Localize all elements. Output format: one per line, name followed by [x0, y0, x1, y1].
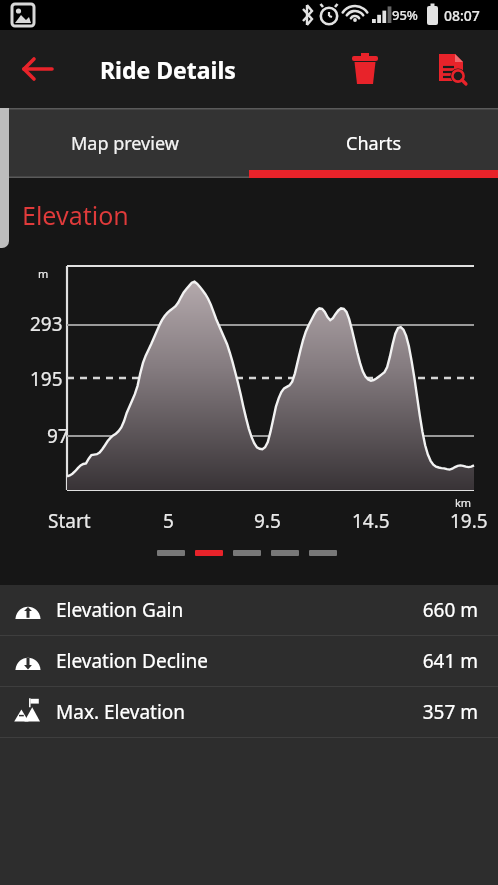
staticText: 14.5 [352, 508, 390, 534]
staticText: 641 m [422, 648, 478, 674]
staticText: 95% [392, 6, 418, 24]
staticText: Start [48, 508, 91, 534]
button[interactable]: Elevation Gain [0, 585, 498, 635]
staticText: Elevation Decline [56, 648, 209, 674]
staticText: m [38, 266, 49, 281]
button[interactable] [157, 550, 185, 556]
staticText: 08:07 [444, 6, 480, 25]
button[interactable]: Charts [249, 108, 498, 178]
button[interactable] [195, 550, 223, 556]
staticText: 660 m [422, 597, 478, 623]
staticText: Max. Elevation [56, 699, 186, 725]
staticText: Ride Details [100, 54, 236, 85]
staticText: km [455, 495, 472, 510]
button[interactable]: Ride report [426, 44, 476, 94]
button[interactable]: Max. Elevation [0, 687, 498, 737]
button[interactable]: Back [12, 43, 64, 95]
staticText: Elevation Gain [56, 597, 184, 623]
staticText: 293 [30, 311, 63, 337]
staticText: 357 m [422, 699, 478, 725]
staticText: Map preview [71, 131, 179, 156]
staticText: 9.5 [254, 508, 281, 534]
button[interactable]: Delete [340, 44, 390, 94]
staticText: Elevation [22, 198, 129, 232]
staticText: 97 [47, 423, 69, 449]
staticText: Charts [346, 131, 402, 156]
staticText: 5 [163, 508, 174, 534]
button[interactable] [309, 550, 337, 556]
staticText: 195 [30, 366, 63, 392]
button[interactable]: Map preview [0, 108, 249, 178]
button[interactable] [233, 550, 261, 556]
staticText: 19.5 [450, 508, 488, 534]
button[interactable]: Elevation Decline [0, 636, 498, 686]
button[interactable] [271, 550, 299, 556]
